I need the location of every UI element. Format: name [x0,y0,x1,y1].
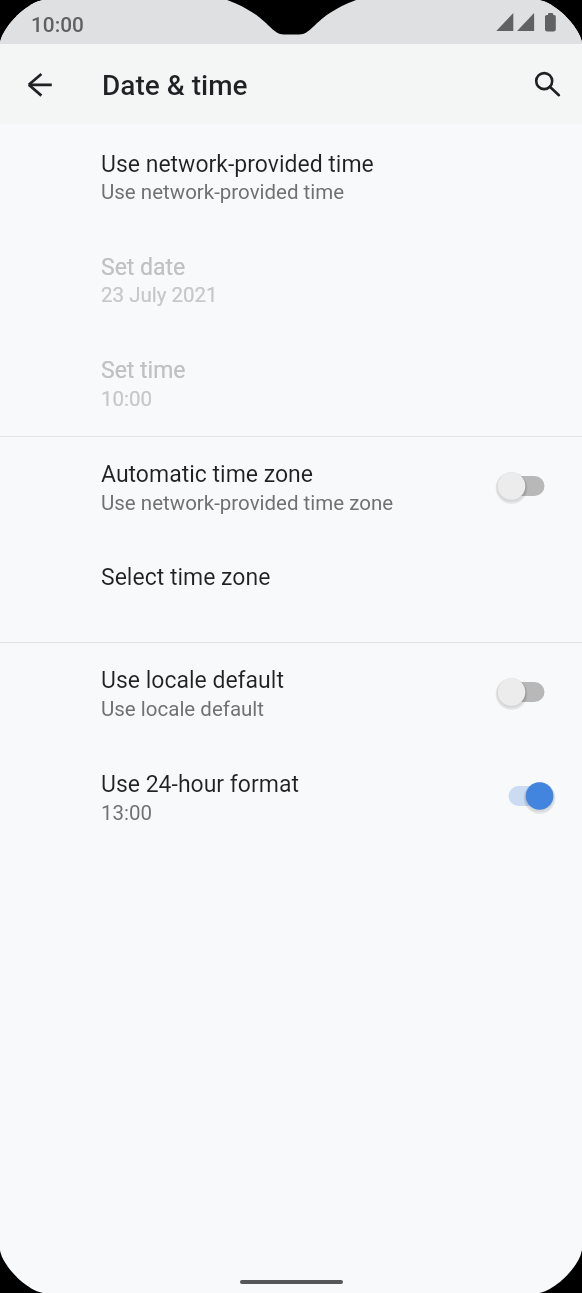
button[interactable] [0,436,582,524]
staticText: 13:00 [101,801,153,825]
staticText: Date & time [102,69,248,102]
staticText: 10:00 [31,13,84,37]
staticText: Use locale default [101,667,284,694]
button[interactable] [0,126,582,214]
button[interactable] [0,539,582,605]
staticText: Use network-provided time zone [101,491,394,515]
staticText: Use locale default [101,697,265,721]
staticText: Use network-provided time [101,180,345,204]
button[interactable] [490,656,562,728]
staticText: Use network-provided time [101,151,374,178]
staticText: Use 24-hour format [101,771,299,798]
button[interactable] [490,450,562,522]
staticText: Set time [101,357,186,384]
button[interactable]: Search [520,60,568,108]
button[interactable]: Back [16,60,64,108]
button[interactable] [0,746,582,834]
button[interactable] [0,642,582,730]
staticText: Automatic time zone [101,461,313,488]
staticText: 10:00 [101,387,153,411]
button[interactable] [0,332,582,420]
button[interactable] [0,229,582,317]
staticText: 23 July 2021 [101,283,218,307]
button[interactable] [490,760,562,832]
staticText: Select time zone [101,564,271,591]
staticText: Set date [101,254,186,281]
